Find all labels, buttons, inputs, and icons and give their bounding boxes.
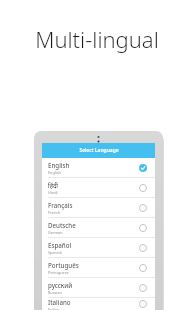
- button[interactable]: Select Language: [42, 143, 155, 158]
- button[interactable]: Select German: [137, 222, 149, 234]
- button[interactable]: Select Italian: [137, 298, 149, 310]
- staticText: русский: [48, 281, 73, 289]
- staticText: French: [48, 210, 61, 215]
- button[interactable]: русский: [42, 278, 155, 297]
- staticText: Hindi: [48, 190, 58, 195]
- staticText: Español: [48, 241, 72, 249]
- button[interactable]: Français: [42, 198, 155, 217]
- staticText: Deutsche: [48, 221, 76, 229]
- button[interactable]: Select Portuguese: [137, 262, 149, 274]
- button[interactable]: Selected English: [137, 162, 149, 174]
- staticText: Spanish: [48, 250, 63, 255]
- staticText: Portuguese: [48, 270, 69, 275]
- button[interactable]: Select Russian: [137, 282, 149, 294]
- staticText: Français: [48, 201, 73, 209]
- button[interactable]: Deutsche: [42, 218, 155, 237]
- staticText: English: [48, 170, 61, 175]
- staticText: English: [48, 161, 70, 169]
- button[interactable]: हिंदी: [42, 178, 155, 197]
- button[interactable]: Italiano: [42, 298, 155, 310]
- staticText: Select Language: [79, 147, 119, 154]
- staticText: Italiano: [48, 298, 71, 306]
- staticText: हिंदी: [48, 181, 59, 189]
- staticText: German: [48, 230, 63, 235]
- button[interactable]: Select French: [137, 202, 149, 214]
- staticText: Italian: [48, 307, 60, 310]
- button[interactable]: English: [42, 158, 155, 177]
- button[interactable]: Select Spanish: [137, 242, 149, 254]
- staticText: Russian: [48, 290, 62, 295]
- button[interactable]: Select Hindi: [137, 182, 149, 194]
- button[interactable]: Português: [42, 258, 155, 277]
- button[interactable]: Español: [42, 238, 155, 257]
- staticText: Português: [48, 261, 79, 269]
- staticText: Multi-lingual: [35, 24, 159, 54]
